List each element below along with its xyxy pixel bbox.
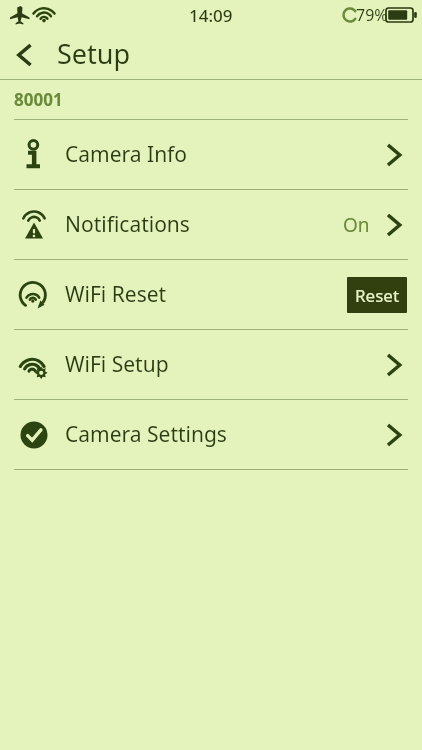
button[interactable]: Notifications [0,190,422,259]
button[interactable]: WiFi Setup [0,330,422,399]
staticText: 80001 [14,88,63,111]
staticText: Notifications [65,210,343,239]
staticText: 14:09 [189,4,233,27]
staticText: WiFi Setup [65,350,381,379]
staticText: WiFi Reset [65,280,347,309]
staticText: Camera Info [65,140,381,169]
button[interactable]: Camera Info [0,120,422,189]
staticText: Camera Settings [65,420,381,449]
button[interactable]: Reset [347,277,407,313]
button[interactable]: WiFi Reset [0,260,422,329]
staticText: Setup [57,35,131,72]
staticText: Reset [355,284,400,307]
staticText: On [343,212,370,238]
button[interactable]: Back [0,31,48,79]
staticText: 79% [356,4,388,26]
button[interactable]: Camera Settings [0,400,422,469]
